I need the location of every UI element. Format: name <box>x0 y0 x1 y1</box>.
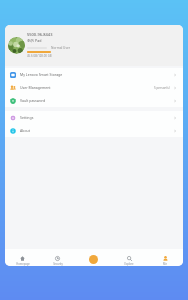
button[interactable]: Me <box>147 249 183 266</box>
button[interactable]: Security <box>40 249 75 266</box>
staticText: 5500-96-8443 <box>27 32 53 37</box>
button[interactable]: Homepage <box>5 249 40 266</box>
staticText: Homepage <box>16 262 30 266</box>
staticText: Vault password <box>20 98 46 103</box>
button[interactable]: My Lenovo Smart Storage <box>5 68 183 81</box>
staticText: About <box>20 128 30 133</box>
staticText: Me <box>163 262 167 266</box>
button[interactable]: Settings <box>5 111 183 124</box>
button[interactable]: User Management <box>5 81 183 94</box>
button[interactable]: Vault password <box>5 94 183 107</box>
staticText: User Management <box>20 85 51 90</box>
staticText: Normal User <box>51 46 71 50</box>
button[interactable]: Add <box>75 249 111 266</box>
button[interactable]: About <box>5 124 183 137</box>
button[interactable]: Explore <box>111 249 147 266</box>
staticText: Security <box>53 262 63 266</box>
staticText: 5 person(s) <box>154 86 170 90</box>
button[interactable]: 5500-96-8443 <box>5 25 183 66</box>
staticText: Settings <box>20 115 34 120</box>
staticText: Explore <box>124 262 134 266</box>
staticText: 李的 Pad <box>27 38 42 43</box>
staticText: 45.6 GB/128.00 GB <box>27 54 52 58</box>
staticText: My Lenovo Smart Storage <box>20 72 63 77</box>
